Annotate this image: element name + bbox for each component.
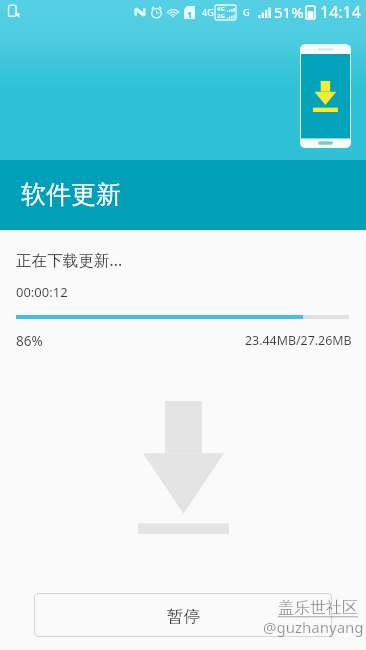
- staticText: 盖乐世社区: [278, 598, 358, 618]
- staticText: 86%: [16, 332, 43, 350]
- staticText: G: [243, 6, 250, 18]
- other: Dual SIM signal: [215, 5, 236, 20]
- staticText: 1: [187, 8, 193, 20]
- staticText: 正在下载更新...: [16, 249, 123, 270]
- other: Alarm set: [150, 6, 163, 19]
- other: Downloading: [138, 401, 229, 534]
- other: NFC: [134, 6, 146, 18]
- other: Phone downloading update: [300, 44, 351, 148]
- staticText: @guzhanyang: [263, 617, 364, 637]
- other: SIM 1: [184, 6, 195, 19]
- other: Battery 51 percent: [306, 5, 315, 19]
- staticText: 软件更新: [21, 179, 121, 210]
- staticText: 4G: [202, 6, 214, 18]
- other: Smart view: [7, 5, 20, 18]
- button[interactable]: 暂停: [34, 593, 332, 637]
- staticText: 51%: [274, 2, 304, 22]
- staticText: 4G: [217, 5, 225, 13]
- other: Mobile signal: [258, 6, 271, 18]
- other: Wi-Fi: [167, 6, 179, 18]
- staticText: 00:00:12: [16, 283, 68, 301]
- staticText: 23.44MB/27.26MB: [245, 332, 352, 349]
- staticText: 2G: [217, 12, 225, 20]
- staticText: 14:14: [320, 1, 361, 23]
- staticText: 暂停: [167, 606, 200, 627]
